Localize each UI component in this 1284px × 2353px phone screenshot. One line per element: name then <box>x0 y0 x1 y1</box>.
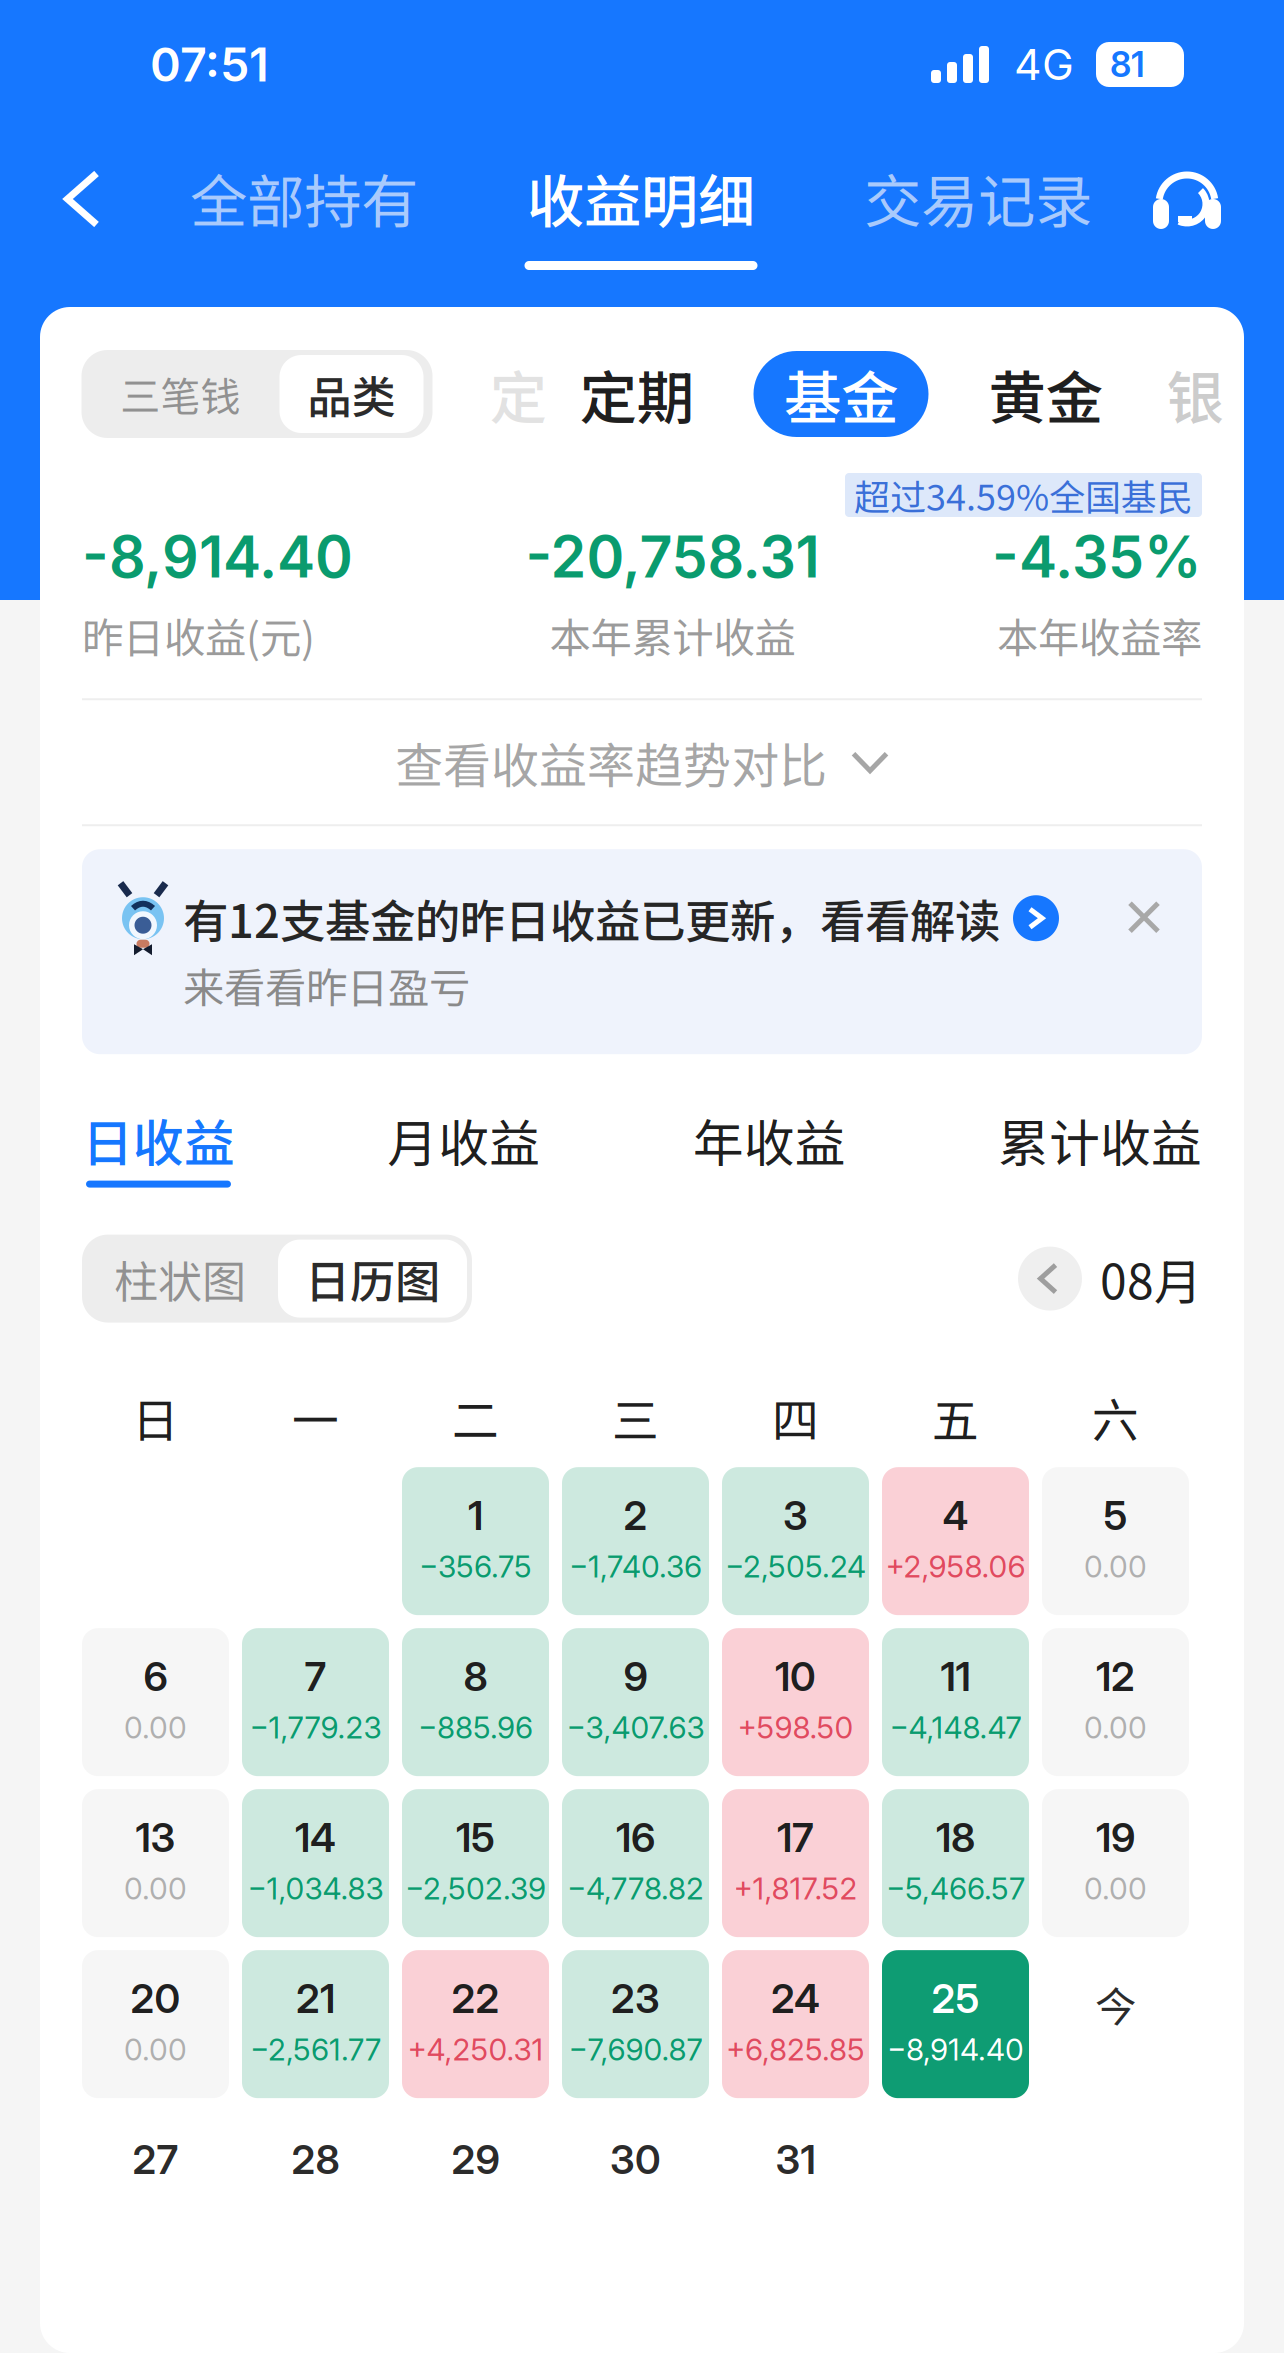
staticText: 2 <box>623 1491 647 1540</box>
staticText: 0.00 <box>124 2032 187 2068</box>
staticText: −3,407.63 <box>566 1710 704 1746</box>
button[interactable]: 黄金 <box>986 352 1104 435</box>
button[interactable]: 9 <box>562 1628 709 1776</box>
button[interactable]: 3 <box>722 1467 869 1615</box>
staticText: −2,502.39 <box>405 1871 546 1907</box>
staticText: −8,914.40 <box>887 2032 1024 2068</box>
staticText: 三 <box>612 1384 659 1451</box>
staticText: −1,034.83 <box>247 1871 383 1907</box>
staticText: 10 <box>775 1652 816 1701</box>
staticText: 0.00 <box>124 1871 187 1907</box>
button[interactable]: 31 <box>722 2111 869 2259</box>
staticText: 5 <box>1103 1491 1127 1540</box>
button[interactable]: 全部持有 <box>0 107 424 239</box>
button[interactable]: 16 <box>562 1789 709 1937</box>
button[interactable]: 收益明细 <box>0 107 761 270</box>
button[interactable]: 13 <box>82 1789 229 1937</box>
button[interactable]: 12 <box>1042 1628 1189 1776</box>
button[interactable]: 29 <box>402 2111 549 2259</box>
button[interactable]: 月收益 <box>387 1103 540 1188</box>
staticText: −2,505.24 <box>725 1549 866 1585</box>
staticText: 15 <box>456 1813 495 1862</box>
button[interactable]: 基金 <box>753 351 928 437</box>
staticText: 来看看昨日盈亏 <box>183 955 470 1015</box>
staticText: 28 <box>291 2135 339 2184</box>
button[interactable]: 4 <box>882 1467 1029 1615</box>
button[interactable]: 2 <box>562 1467 709 1615</box>
staticText: 0.00 <box>1084 1549 1147 1585</box>
staticText: 31 <box>775 2135 815 2184</box>
button[interactable]: 24 <box>722 1950 869 2098</box>
staticText: 9 <box>623 1652 647 1701</box>
button[interactable]: 23 <box>562 1950 709 2098</box>
button[interactable]: 28 <box>242 2111 389 2259</box>
button[interactable]: 年收益 <box>693 1103 846 1188</box>
button[interactable]: 日收益 <box>82 1103 235 1188</box>
staticText: 4G <box>1014 39 1074 90</box>
button[interactable]: 7 <box>242 1628 389 1776</box>
staticText: 14 <box>295 1813 336 1862</box>
button[interactable]: 19 <box>1042 1789 1189 1937</box>
staticText: 三笔钱 <box>120 365 240 423</box>
button[interactable]: 27 <box>82 2111 229 2259</box>
button[interactable]: 30 <box>562 2111 709 2259</box>
button[interactable]: 18 <box>882 1789 1029 1937</box>
button[interactable]: 1 <box>402 1467 549 1615</box>
button[interactable]: 25 <box>882 1950 1029 2098</box>
button[interactable]: 8 <box>402 1628 549 1776</box>
staticText: 8 <box>463 1652 487 1701</box>
staticText: +2,958.06 <box>885 1549 1025 1585</box>
staticText: 27 <box>132 2135 178 2184</box>
staticText: 30 <box>610 2135 661 2184</box>
staticText: 五 <box>932 1384 979 1451</box>
button[interactable]: 今 <box>1042 1950 1189 2098</box>
staticText: 定期 <box>579 352 693 435</box>
staticText: 昨日收益(元) <box>82 605 315 665</box>
button[interactable]: 柱状图 <box>82 1235 278 1323</box>
button[interactable]: 15 <box>402 1789 549 1937</box>
staticText: +4,250.31 <box>407 2032 543 2068</box>
button[interactable]: 20 <box>82 1950 229 2098</box>
button[interactable]: 22 <box>402 1950 549 2098</box>
button[interactable]: 11 <box>882 1628 1029 1776</box>
staticText: 0.00 <box>1084 1710 1147 1746</box>
staticText: -20,758.31 <box>525 522 819 591</box>
button[interactable]: 6 <box>82 1628 229 1776</box>
staticText: 21 <box>296 1974 335 2023</box>
button[interactable]: 08月 <box>1018 1244 1202 1313</box>
staticText: 本年收益率 <box>997 605 1202 665</box>
button[interactable]: 品类 <box>279 355 423 433</box>
staticText: 黄金 <box>988 352 1102 435</box>
button[interactable]: 14 <box>242 1789 389 1937</box>
button[interactable]: 定期 <box>577 352 695 435</box>
staticText: 日历图 <box>305 1246 440 1311</box>
staticText: 一 <box>292 1384 339 1451</box>
button[interactable]: 查看收益率趋势对比 <box>82 700 1202 824</box>
button[interactable]: 日历图 <box>278 1240 467 1318</box>
button[interactable]: 三笔钱 <box>81 350 279 438</box>
button[interactable]: 客服 <box>0 107 1221 238</box>
staticText: 24 <box>771 1974 820 2023</box>
button[interactable]: 5 <box>1042 1467 1189 1615</box>
button[interactable]: 累计收益 <box>998 1103 1202 1188</box>
staticText: 基金 <box>784 352 898 435</box>
button[interactable]: 21 <box>242 1950 389 2098</box>
staticText: 13 <box>135 1813 175 1862</box>
staticText: −356.75 <box>419 1549 532 1585</box>
button[interactable]: 关闭 <box>82 849 1161 934</box>
staticText: 25 <box>931 1974 979 2023</box>
staticText: 07:51 <box>150 36 269 93</box>
staticText: 22 <box>451 1974 499 2023</box>
button[interactable]: 返回 <box>0 107 100 228</box>
staticText: −4,148.47 <box>889 1710 1021 1746</box>
staticText: 六 <box>1092 1384 1139 1451</box>
button[interactable]: 17 <box>722 1789 869 1937</box>
button[interactable]: 交易记录 <box>0 107 1098 239</box>
staticText: 日收益 <box>82 1103 235 1177</box>
staticText: −7,690.87 <box>568 2032 702 2068</box>
button[interactable]: 10 <box>722 1628 869 1776</box>
